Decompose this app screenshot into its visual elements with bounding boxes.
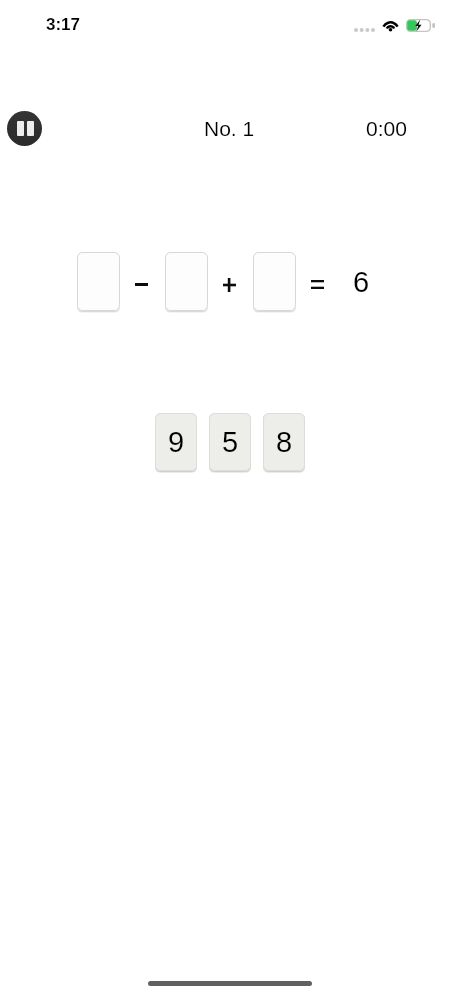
staticText: 5: [222, 426, 239, 458]
button[interactable]: 5: [209, 413, 251, 473]
button[interactable]: 8: [263, 413, 305, 473]
staticText: 0:00: [366, 117, 407, 140]
staticText: 3:17: [46, 15, 81, 34]
staticText: No. 1: [204, 117, 255, 140]
button[interactable]: Third number slot: [253, 252, 296, 313]
button[interactable]: 9: [155, 413, 197, 473]
staticText: 8: [276, 426, 293, 458]
button[interactable]: First number slot: [77, 252, 120, 313]
button[interactable]: Second number slot: [165, 252, 208, 313]
staticText: 6: [353, 266, 370, 298]
staticText: 9: [168, 426, 185, 458]
button[interactable]: Pause: [7, 111, 42, 146]
